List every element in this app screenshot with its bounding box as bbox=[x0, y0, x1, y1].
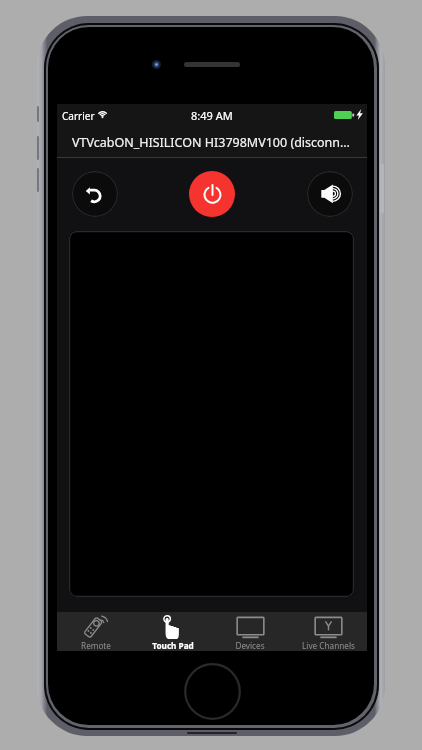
button[interactable]: Power bbox=[189, 171, 235, 217]
staticText: Touch Pad bbox=[152, 640, 194, 651]
button[interactable]: Remote bbox=[57, 612, 134, 651]
staticText: Carrier bbox=[62, 109, 95, 123]
button[interactable]: Touch Pad bbox=[134, 612, 211, 651]
staticText: Remote bbox=[81, 640, 111, 651]
button[interactable]: Devices bbox=[211, 612, 289, 651]
staticText: Live Channels bbox=[302, 640, 355, 651]
staticText: Devices bbox=[235, 640, 265, 651]
button[interactable]: Back bbox=[72, 171, 118, 217]
staticText: VTVcabON_HISILICON HI3798MV100 (disconn… bbox=[72, 134, 350, 151]
button[interactable]: Volume bbox=[307, 171, 353, 217]
button[interactable]: Live Channels bbox=[289, 612, 367, 651]
staticText: 8:49 AM bbox=[191, 108, 233, 123]
button[interactable] bbox=[69, 231, 354, 597]
